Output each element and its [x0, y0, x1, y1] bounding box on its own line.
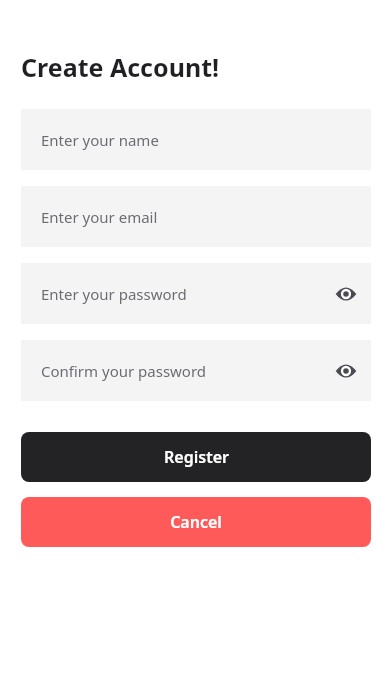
button[interactable]: Cancel	[21, 497, 371, 547]
button[interactable]: Enter your email	[21, 186, 371, 247]
staticText: Register	[164, 446, 229, 468]
button[interactable]: Confirm your password	[21, 340, 371, 401]
staticText: Enter your email	[41, 207, 158, 227]
staticText: Enter your name	[41, 130, 159, 150]
button[interactable]: Enter your name	[21, 109, 371, 170]
button[interactable]: Show password	[331, 356, 361, 386]
button[interactable]: Register	[21, 432, 371, 482]
staticText: Cancel	[170, 511, 222, 533]
staticText: Create Account!	[21, 50, 220, 84]
button[interactable]: Show password	[331, 279, 361, 309]
staticText: Enter your password	[41, 284, 187, 304]
button[interactable]: Enter your password	[21, 263, 371, 324]
staticText: Confirm your password	[41, 361, 207, 381]
